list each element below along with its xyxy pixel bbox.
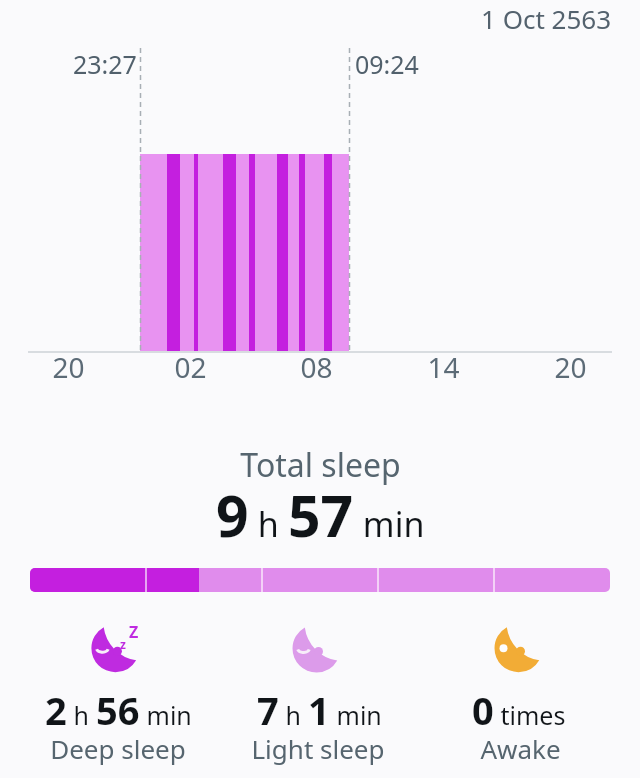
staticText: Z [129, 621, 139, 643]
staticText: 0 [472, 684, 494, 736]
staticText: 08 [300, 348, 333, 386]
staticText: 20 [52, 348, 85, 386]
staticText: Deep sleep [50, 731, 186, 766]
staticText: Light sleep [251, 731, 385, 766]
staticText: h [249, 501, 288, 547]
button[interactable]: 1 Oct 2563 [481, 1, 612, 36]
staticText: 7 [257, 684, 279, 736]
staticText: times [494, 698, 566, 732]
staticText: Awake [480, 731, 561, 766]
button[interactable]: 2 [0, 684, 236, 736]
staticText: h [67, 698, 96, 732]
button[interactable]: 0 [401, 684, 637, 736]
staticText: 09:24 [355, 47, 419, 81]
staticText: 23:27 [73, 47, 137, 81]
staticText: 57 [288, 476, 354, 554]
staticText: z [120, 636, 126, 652]
staticText: min [354, 501, 425, 547]
staticText: Total sleep [240, 443, 401, 487]
staticText: 2 [45, 684, 67, 736]
staticText: 20 [554, 348, 587, 386]
staticText: 02 [174, 348, 207, 386]
staticText: 14 [427, 348, 460, 386]
button[interactable]: 9 [120, 476, 520, 554]
button[interactable]: 7 [201, 684, 437, 736]
staticText: 56 [96, 684, 140, 736]
staticText: h [279, 698, 308, 732]
staticText: 1 [308, 684, 330, 736]
staticText: min [140, 698, 192, 732]
staticText: 9 [216, 476, 249, 554]
staticText: min [330, 698, 382, 732]
